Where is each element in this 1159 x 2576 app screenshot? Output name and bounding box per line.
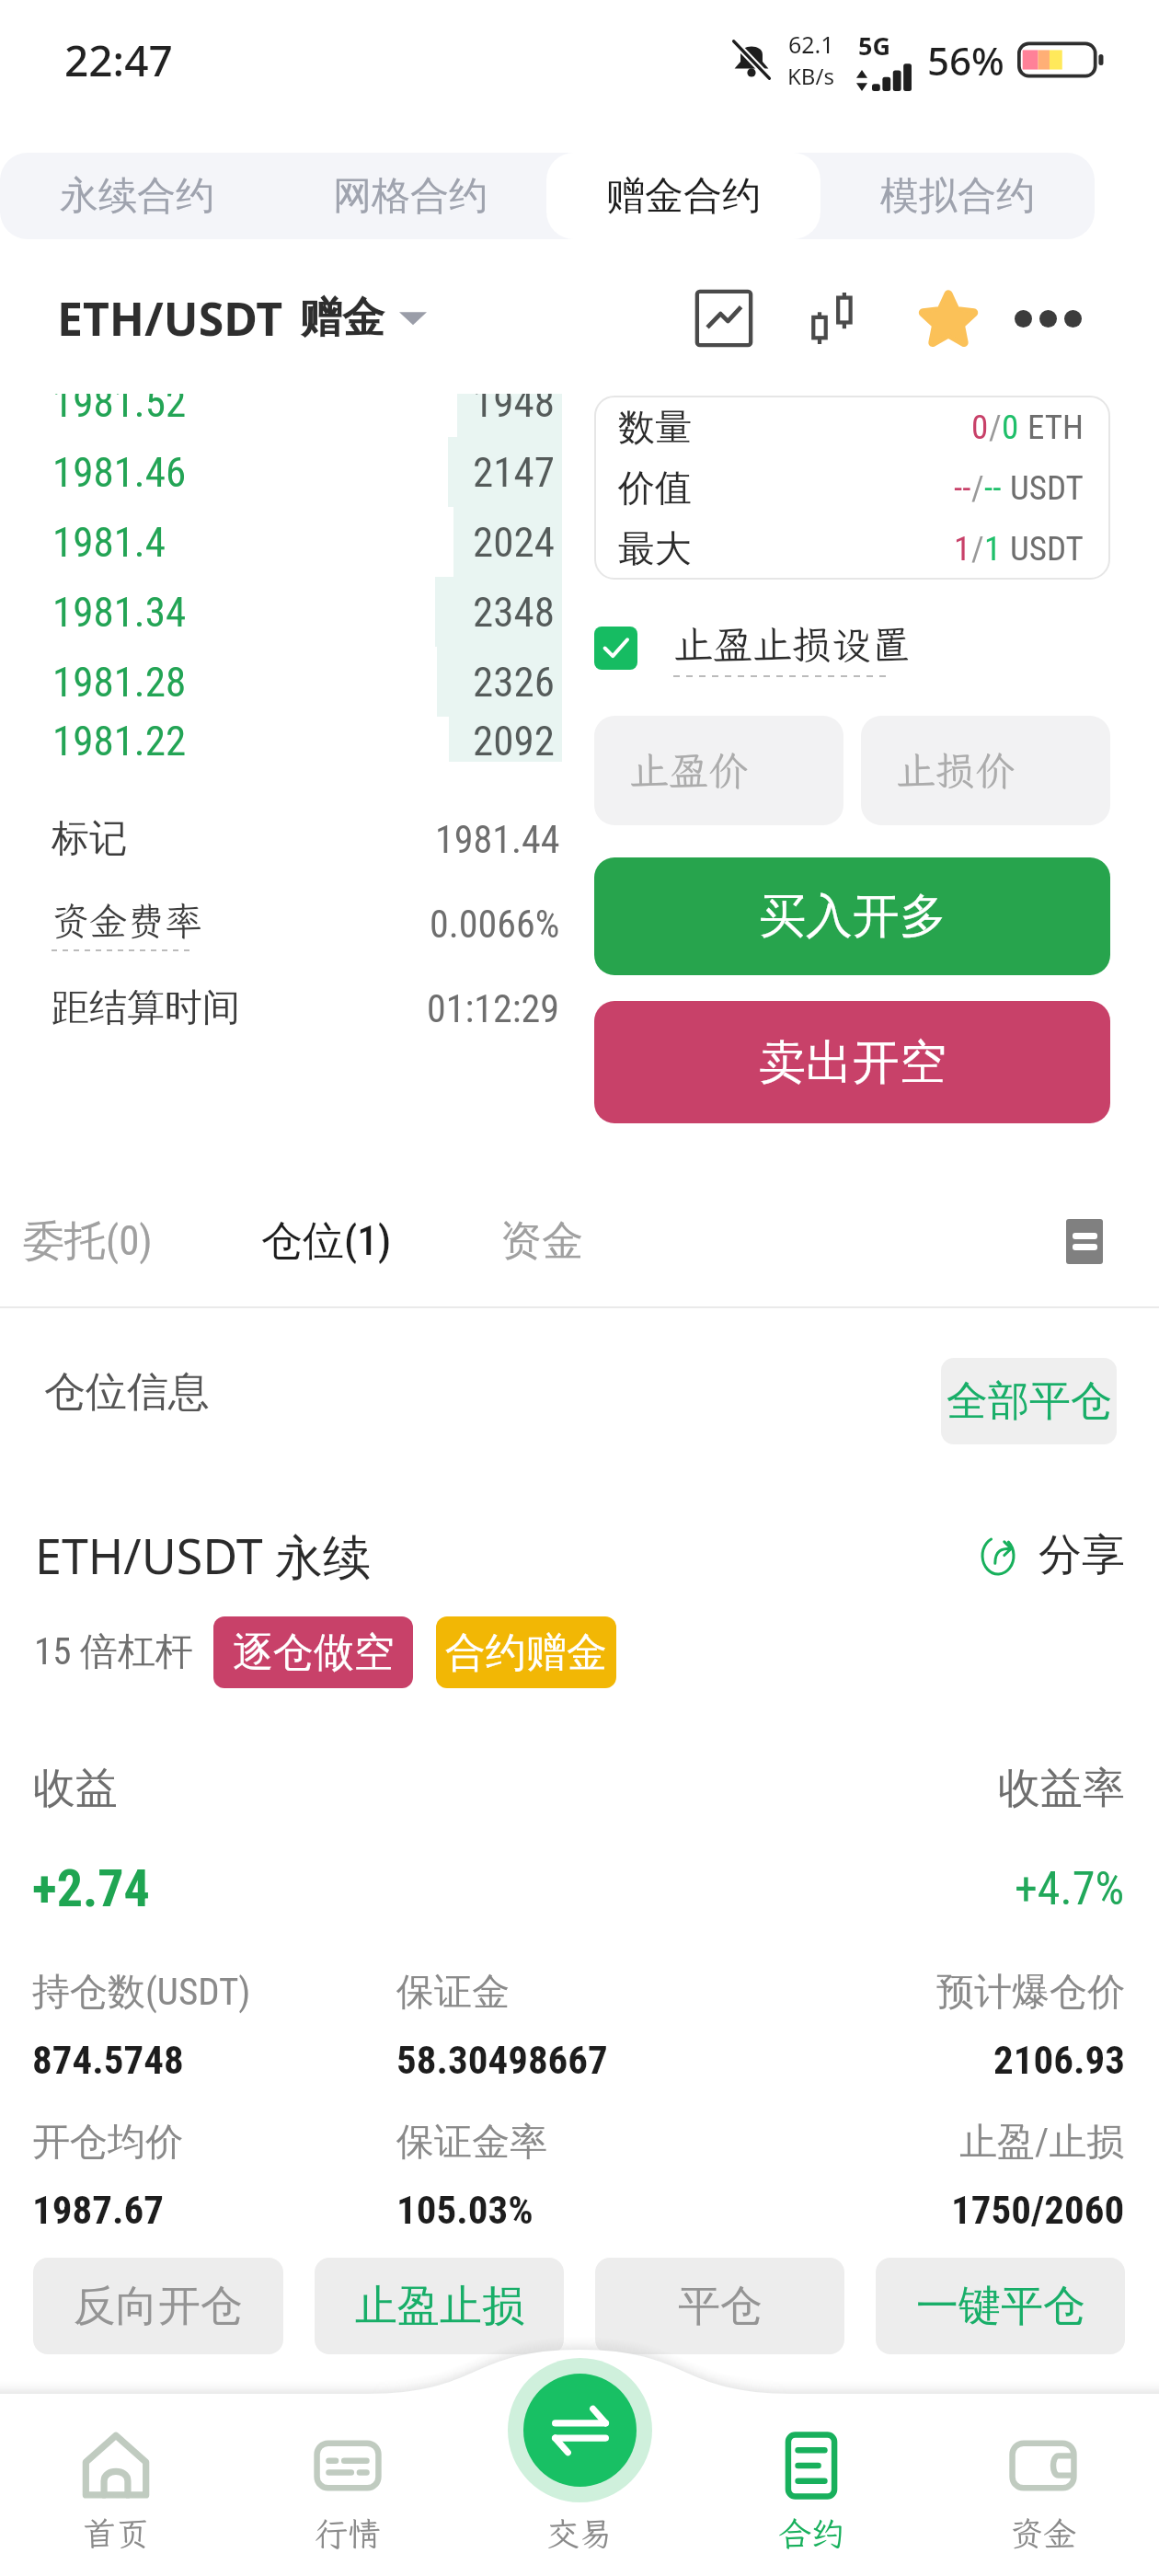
staticText: /: [971, 529, 984, 569]
staticText: 止盈价: [629, 744, 748, 797]
staticText: 105.03%: [396, 2187, 534, 2233]
staticText: 22:47: [64, 31, 173, 89]
staticText: 平仓: [678, 2280, 763, 2333]
staticText: --: [954, 468, 971, 508]
staticText: 1981.34: [52, 588, 187, 637]
staticText: ETH/USDT: [57, 287, 283, 350]
staticText: 2326: [473, 658, 555, 707]
staticText: 最大: [618, 525, 692, 571]
staticText: 01:12:29: [427, 986, 560, 1031]
button[interactable]: 反向开仓: [33, 2258, 283, 2354]
button[interactable]: Chart: [686, 281, 762, 356]
staticText: 2024: [473, 518, 555, 567]
staticText: 1: [984, 529, 1002, 569]
staticText: 保证金率: [396, 2119, 547, 2167]
staticText: 持仓数(USDT): [32, 1969, 251, 2017]
button[interactable]: 网格合约: [273, 153, 546, 239]
staticText: 赠金合约: [606, 172, 761, 221]
staticText: 永续合约: [60, 172, 214, 221]
button[interactable]: More: [1010, 281, 1085, 356]
staticText: 仓位(1): [261, 1215, 392, 1268]
staticText: 分享: [1039, 1528, 1125, 1582]
staticText: 1: [954, 529, 971, 569]
staticText: 模拟合约: [880, 172, 1035, 221]
button[interactable]: 止盈价: [594, 716, 843, 825]
staticText: 1948: [473, 394, 555, 427]
staticText: 保证金: [396, 1969, 510, 2017]
button[interactable]: 永续合约: [0, 153, 273, 239]
button[interactable]: 全部平仓: [941, 1358, 1117, 1444]
staticText: 5G: [858, 29, 890, 63]
button[interactable]: 资金: [482, 1199, 602, 1284]
button[interactable]: Favorite: [911, 281, 986, 356]
staticText: 0: [971, 408, 989, 447]
staticText: 合约: [778, 2512, 845, 2555]
staticText: 止盈/止损: [959, 2119, 1125, 2167]
staticText: 资金: [500, 1215, 583, 1268]
button[interactable]: 止盈止损设置: [594, 618, 911, 677]
staticText: 数量: [618, 404, 692, 450]
button[interactable]: 赠金合约: [546, 153, 820, 239]
button[interactable]: 模拟合约: [820, 153, 1095, 239]
staticText: 874.5748: [32, 2037, 184, 2083]
staticText: 收益: [33, 1762, 118, 1815]
staticText: 2147: [473, 448, 555, 497]
button[interactable]: 资金: [927, 2386, 1159, 2576]
staticText: 1981.4: [52, 518, 166, 567]
staticText: /: [971, 468, 984, 508]
staticText: 行情: [315, 2512, 382, 2555]
staticText: 收益率: [998, 1762, 1125, 1815]
staticText: 委托(0): [23, 1215, 153, 1268]
button[interactable]: 行情: [232, 2386, 464, 2576]
button[interactable]: Filter: [1066, 1219, 1103, 1264]
staticText: 0: [1002, 408, 1019, 447]
button[interactable]: 交易: [464, 2386, 695, 2576]
staticText: 止损价: [896, 744, 1015, 797]
button[interactable]: 委托(0): [5, 1199, 171, 1284]
staticText: 1981.22: [52, 717, 187, 762]
staticText: 一键平仓: [916, 2280, 1085, 2333]
staticText: ETH/USDT 永续: [35, 1523, 372, 1588]
staticText: 止盈止损: [355, 2280, 524, 2333]
staticText: 2092: [473, 717, 555, 762]
staticText: KB/s: [787, 61, 834, 91]
staticText: +4.7%: [1015, 1862, 1125, 1916]
staticText: 卖出开空: [759, 1033, 947, 1092]
staticText: 合约赠金: [445, 1627, 607, 1678]
staticText: 首页: [83, 2512, 150, 2555]
button[interactable]: 首页: [0, 2386, 232, 2576]
staticText: ETH: [1027, 408, 1084, 447]
staticText: /: [989, 408, 1002, 447]
button[interactable]: Candles: [795, 281, 870, 356]
staticText: 交易: [546, 2512, 614, 2555]
button[interactable]: 合约: [695, 2386, 927, 2576]
button[interactable]: 一键平仓: [876, 2258, 1125, 2354]
button[interactable]: 卖出开空: [594, 1001, 1110, 1123]
staticText: 1987.67: [32, 2187, 164, 2233]
staticText: 反向开仓: [74, 2280, 243, 2333]
staticText: 资金: [1010, 2512, 1077, 2555]
staticText: 全部平仓: [947, 1375, 1112, 1428]
staticText: USDT: [1010, 468, 1084, 508]
staticText: +2.74: [32, 1858, 150, 1919]
staticText: 0.0066%: [430, 902, 560, 947]
staticText: 价值: [618, 465, 692, 511]
button[interactable]: 买入开多: [594, 857, 1110, 975]
button[interactable]: Trade: [523, 2374, 637, 2487]
button[interactable]: ETH/USDT: [57, 287, 427, 350]
staticText: 1750/2060: [951, 2187, 1125, 2233]
staticText: 1981.52: [52, 394, 187, 427]
button[interactable]: 分享: [980, 1528, 1125, 1582]
staticText: 2106.93: [993, 2037, 1125, 2083]
button[interactable]: 止盈止损: [315, 2258, 564, 2354]
staticText: 1981.46: [52, 448, 187, 497]
button[interactable]: 仓位(1): [243, 1199, 410, 1284]
staticText: 15 倍杠杆: [34, 1628, 193, 1676]
staticText: 赠金: [300, 292, 384, 345]
button[interactable]: 止损价: [861, 716, 1110, 825]
staticText: 逐仓做空: [233, 1627, 395, 1678]
button[interactable]: 平仓: [595, 2258, 844, 2354]
staticText: 56%: [927, 34, 1004, 86]
staticText: 预计爆仓价: [936, 1969, 1125, 2017]
staticText: 标记: [52, 815, 127, 863]
